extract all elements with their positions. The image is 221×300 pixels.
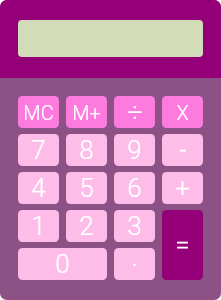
button[interactable]: 6 [114,172,155,204]
staticText: . [131,248,138,272]
staticText: 6 [127,173,142,203]
button[interactable]: 5 [66,172,107,204]
staticText: 2 [79,211,94,241]
button[interactable]: Decimal point [114,248,155,280]
staticText: = [175,230,190,260]
staticText: 4 [31,173,46,203]
staticText: 5 [79,173,94,203]
button[interactable]: Multiply [162,96,203,128]
button[interactable]: Memory add [66,96,107,128]
button[interactable]: 4 [18,172,59,204]
staticText: + [175,173,190,203]
button[interactable]: 1 [18,210,59,242]
button[interactable]: 8 [66,134,107,166]
staticText: 8 [79,135,94,165]
button[interactable]: Memory clear [18,96,59,128]
staticText: MC [23,101,54,124]
staticText: - [179,135,187,165]
button[interactable]: Divide [114,96,155,128]
staticText: 1 [31,211,46,241]
staticText: 9 [127,135,142,165]
button[interactable]: 7 [18,134,59,166]
button[interactable]: Minus [162,134,203,166]
button[interactable]: 3 [114,210,155,242]
staticText: 0 [55,249,70,279]
staticText: X [176,101,189,124]
button[interactable]: 9 [114,134,155,166]
button[interactable]: 2 [66,210,107,242]
button[interactable]: 0 [18,248,107,280]
staticText: ÷ [127,97,143,128]
button[interactable]: Equals [162,210,203,280]
staticText: 3 [127,211,142,241]
staticText: M+ [72,101,101,124]
button[interactable]: Plus [162,172,203,204]
staticText: 7 [31,135,46,165]
